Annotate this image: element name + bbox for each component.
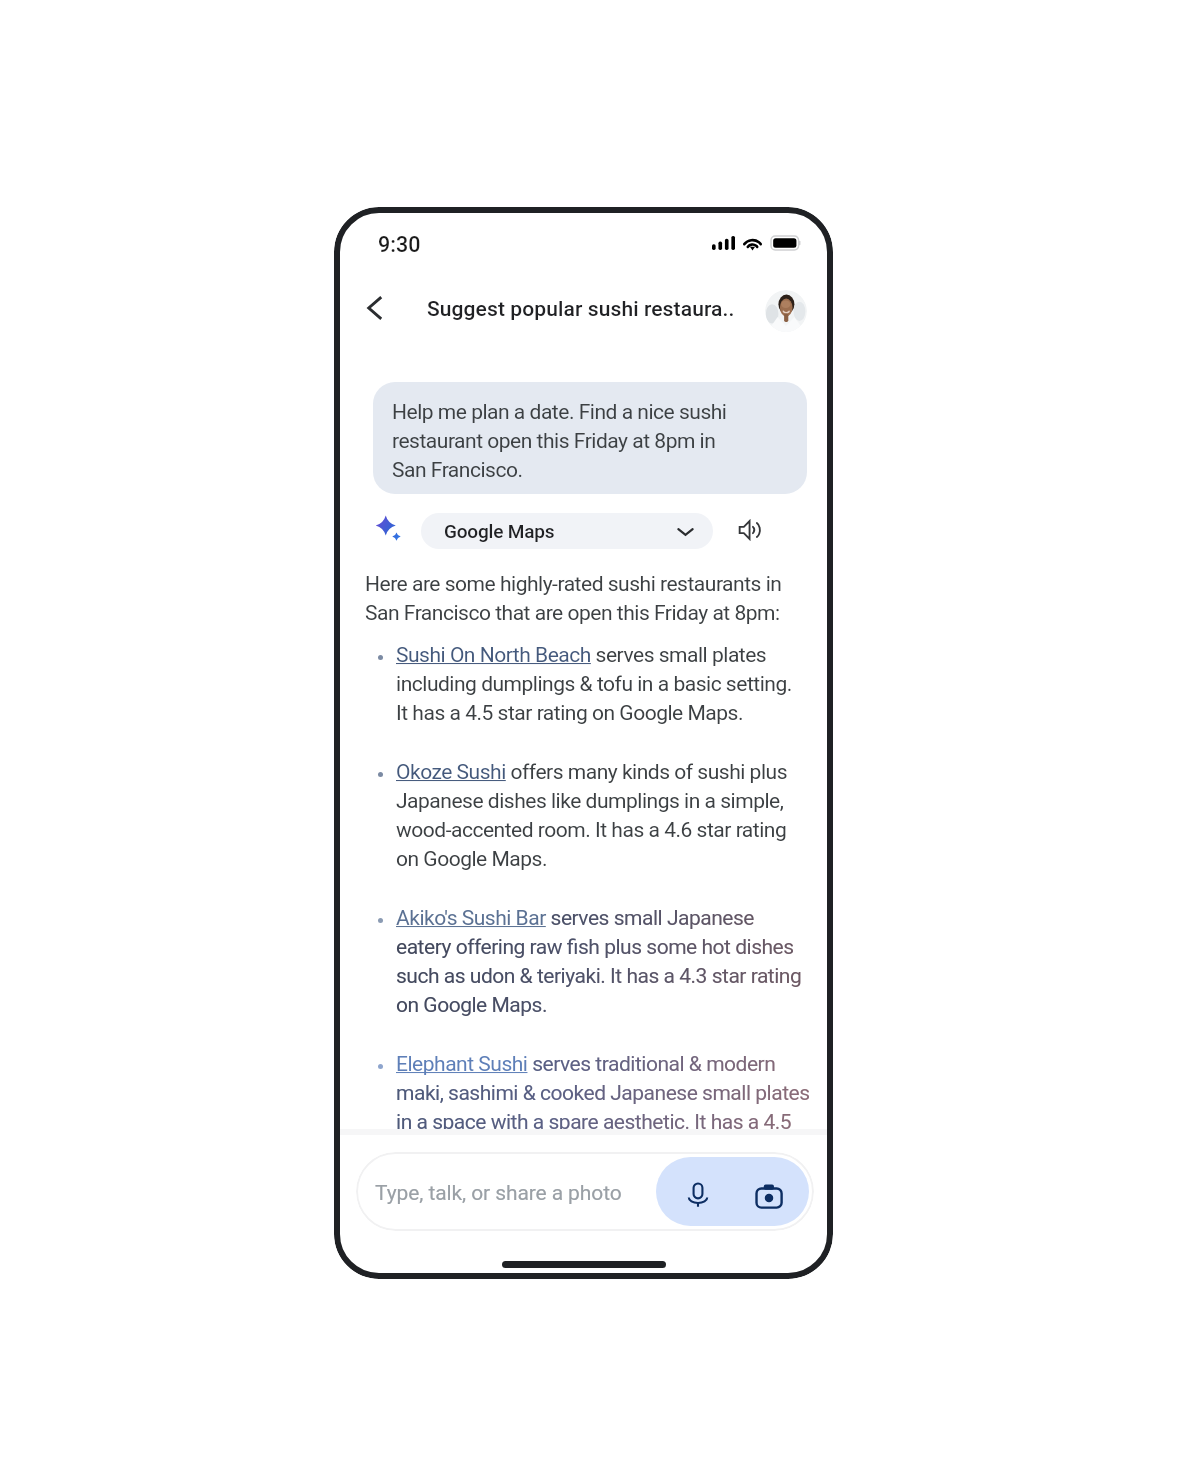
staticText: Google Maps xyxy=(444,520,677,542)
button[interactable]: Type, talk, or share a photo xyxy=(356,1152,814,1231)
button[interactable]: Account xyxy=(765,290,807,332)
staticText: Here are some highly-rated sushi restaur… xyxy=(365,572,782,625)
staticText: 9:30 xyxy=(378,232,421,257)
button[interactable]: Listen xyxy=(730,510,770,550)
staticText: Type, talk, or share a photo xyxy=(375,1181,651,1206)
staticText: Help me plan a date. Find a nice sushi r… xyxy=(392,400,737,482)
button[interactable]: Help me plan a date. Find a nice sushi r… xyxy=(373,382,807,494)
staticText: Sushi On North Beach serves small plates… xyxy=(396,643,811,725)
staticText: Akiko's Sushi Bar serves small Japanese … xyxy=(396,906,811,1017)
staticText: Okoze Sushi offers many kinds of sushi p… xyxy=(396,760,811,871)
button[interactable]: Back xyxy=(352,285,398,331)
button[interactable]: Camera xyxy=(745,1171,793,1219)
staticText: Elephant Sushi serves traditional & mode… xyxy=(396,1052,811,1129)
staticText: Suggest popular sushi restaura.. xyxy=(427,297,735,322)
button[interactable]: Voice input xyxy=(674,1171,722,1219)
button[interactable]: Google Maps xyxy=(421,513,713,549)
